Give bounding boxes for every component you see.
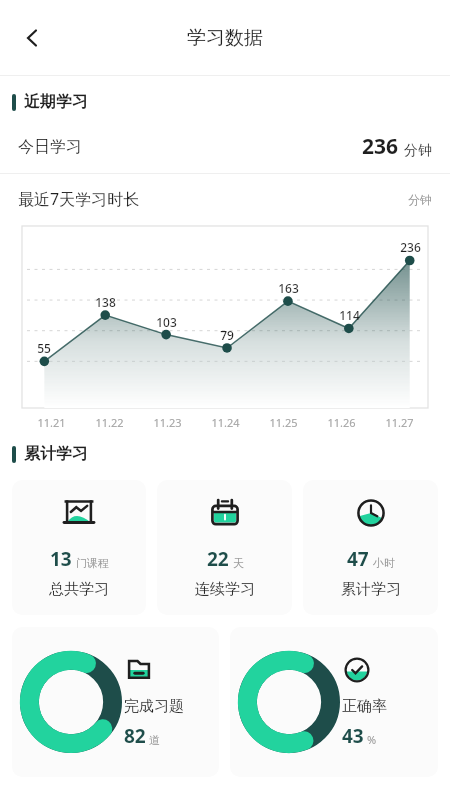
- staticText: 累计学习: [24, 444, 88, 464]
- staticText: 分钟: [408, 192, 432, 207]
- staticText: 13: [50, 546, 72, 572]
- staticText: 累计学习: [341, 580, 401, 599]
- staticText: 天: [233, 556, 244, 570]
- button[interactable]: 完成习题: [12, 627, 219, 777]
- staticText: 分钟: [404, 142, 432, 160]
- staticText: 11.24: [211, 415, 240, 430]
- staticText: 门课程: [76, 556, 109, 570]
- staticText: 79: [220, 327, 234, 343]
- staticText: 11.25: [269, 415, 298, 430]
- staticText: 近期学习: [24, 92, 88, 112]
- staticText: 103: [156, 314, 177, 330]
- staticText: 连续学习: [195, 580, 255, 599]
- button[interactable]: 13: [12, 480, 146, 615]
- staticText: 正确率: [342, 697, 387, 716]
- staticText: 138: [95, 294, 116, 310]
- staticText: 今日学习: [18, 137, 82, 157]
- staticText: 11.21: [37, 415, 66, 430]
- staticText: 学习数据: [187, 26, 263, 50]
- staticText: 11.23: [153, 415, 182, 430]
- button[interactable]: 今日学习: [0, 130, 450, 163]
- staticText: 11.22: [95, 415, 124, 430]
- staticText: 114: [339, 307, 360, 323]
- staticText: 47: [347, 546, 369, 572]
- staticText: %: [367, 732, 377, 747]
- button[interactable]: 正确率: [230, 627, 438, 777]
- button[interactable]: Back: [6, 12, 58, 64]
- staticText: 22: [207, 546, 229, 572]
- staticText: 11.27: [385, 415, 414, 430]
- staticText: 道: [149, 733, 160, 747]
- staticText: 236: [362, 132, 399, 161]
- staticText: 11.26: [327, 415, 356, 430]
- button[interactable]: 47: [303, 480, 438, 615]
- staticText: 完成习题: [124, 697, 184, 716]
- staticText: 43: [342, 723, 364, 749]
- staticText: 最近7天学习时长: [18, 188, 140, 210]
- staticText: 82: [124, 723, 146, 749]
- button[interactable]: 22: [157, 480, 292, 615]
- staticText: 163: [278, 280, 299, 296]
- staticText: 55: [37, 340, 51, 356]
- staticText: 小时: [373, 556, 395, 570]
- staticText: 总共学习: [49, 580, 109, 599]
- staticText: 236: [400, 239, 421, 255]
